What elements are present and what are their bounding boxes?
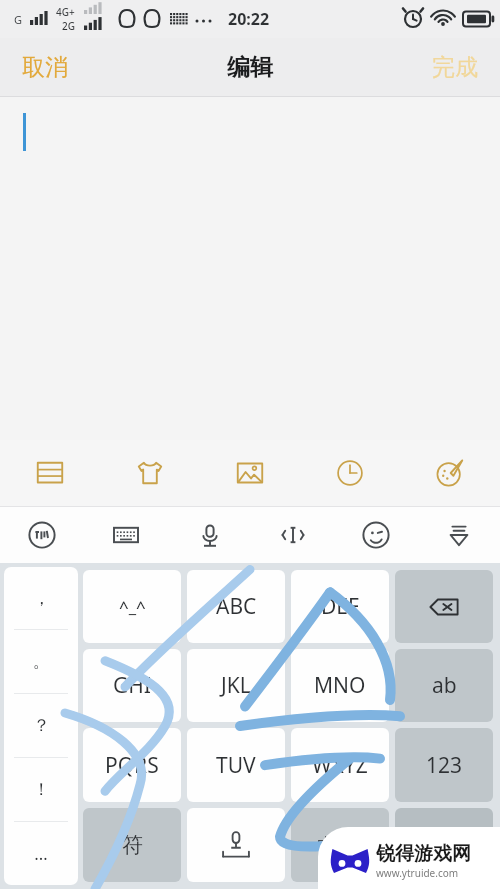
- staticText: ^_^: [119, 595, 146, 618]
- staticText: DEF: [321, 592, 359, 621]
- staticText: MNO: [314, 671, 366, 700]
- staticText: TUV: [216, 751, 256, 780]
- staticText: 4G+: [56, 5, 75, 19]
- staticText: ab: [432, 671, 457, 700]
- button[interactable]: Input method: [0, 507, 84, 563]
- staticText: 123: [426, 751, 463, 780]
- staticText: PQRS: [105, 751, 159, 780]
- button[interactable]: 符: [83, 808, 181, 882]
- button[interactable]: 取消: [0, 43, 90, 92]
- button[interactable]: 中/英: [291, 808, 389, 882]
- staticText: 锐得游戏网: [376, 842, 471, 866]
- button[interactable]: Clothing: [100, 440, 200, 506]
- button[interactable]: Enter: [395, 808, 493, 882]
- staticText: ？: [33, 715, 50, 736]
- button[interactable]: ，: [4, 567, 78, 629]
- button[interactable]: Backspace: [395, 570, 493, 643]
- staticText: 符: [122, 832, 143, 858]
- button[interactable]: Draw: [400, 440, 500, 506]
- button[interactable]: Image: [200, 440, 300, 506]
- staticText: JKL: [221, 671, 251, 700]
- button[interactable]: GHI: [83, 649, 181, 722]
- staticText: …: [34, 842, 48, 865]
- button[interactable]: DEF: [291, 570, 389, 643]
- button[interactable]: 123: [395, 728, 493, 802]
- button[interactable]: JKL: [187, 649, 285, 722]
- staticText: 编辑: [227, 53, 273, 82]
- staticText: 取消: [22, 53, 68, 82]
- button[interactable]: Hide keyboard: [417, 507, 500, 563]
- button[interactable]: PQRS: [83, 728, 181, 802]
- staticText: 。: [33, 651, 50, 672]
- staticText: GHI: [113, 671, 151, 700]
- button[interactable]: …: [4, 822, 78, 885]
- button[interactable]: WXYZ: [291, 728, 389, 802]
- button[interactable]: Emoji: [334, 507, 417, 563]
- button[interactable]: 完成: [410, 43, 500, 92]
- button[interactable]: Keyboard layout: [84, 507, 168, 563]
- staticText: 20:22: [228, 8, 270, 30]
- button[interactable]: Reminder: [300, 440, 400, 506]
- button[interactable]: Voice input: [168, 507, 251, 563]
- button[interactable]: Move cursor: [251, 507, 334, 563]
- staticText: ABC: [216, 592, 257, 621]
- button[interactable]: ？: [4, 694, 78, 757]
- button[interactable]: TUV: [187, 728, 285, 802]
- button[interactable]: ^_^: [83, 570, 181, 643]
- staticText: WXYZ: [312, 751, 368, 780]
- button[interactable]: ab: [395, 649, 493, 722]
- staticText: www.ytruide.com: [376, 866, 459, 880]
- button[interactable]: MNO: [291, 649, 389, 722]
- button[interactable]: ！: [4, 758, 78, 821]
- button[interactable]: Checklist: [0, 440, 100, 506]
- staticText: 2G: [62, 19, 75, 33]
- staticText: G: [14, 12, 23, 27]
- staticText: ！: [33, 779, 50, 800]
- staticText: 中/英: [317, 832, 363, 858]
- staticText: 完成: [432, 53, 478, 82]
- button[interactable]: ABC: [187, 570, 285, 643]
- button[interactable]: 。: [4, 630, 78, 693]
- button[interactable]: [187, 808, 285, 882]
- staticText: ，: [33, 588, 50, 609]
